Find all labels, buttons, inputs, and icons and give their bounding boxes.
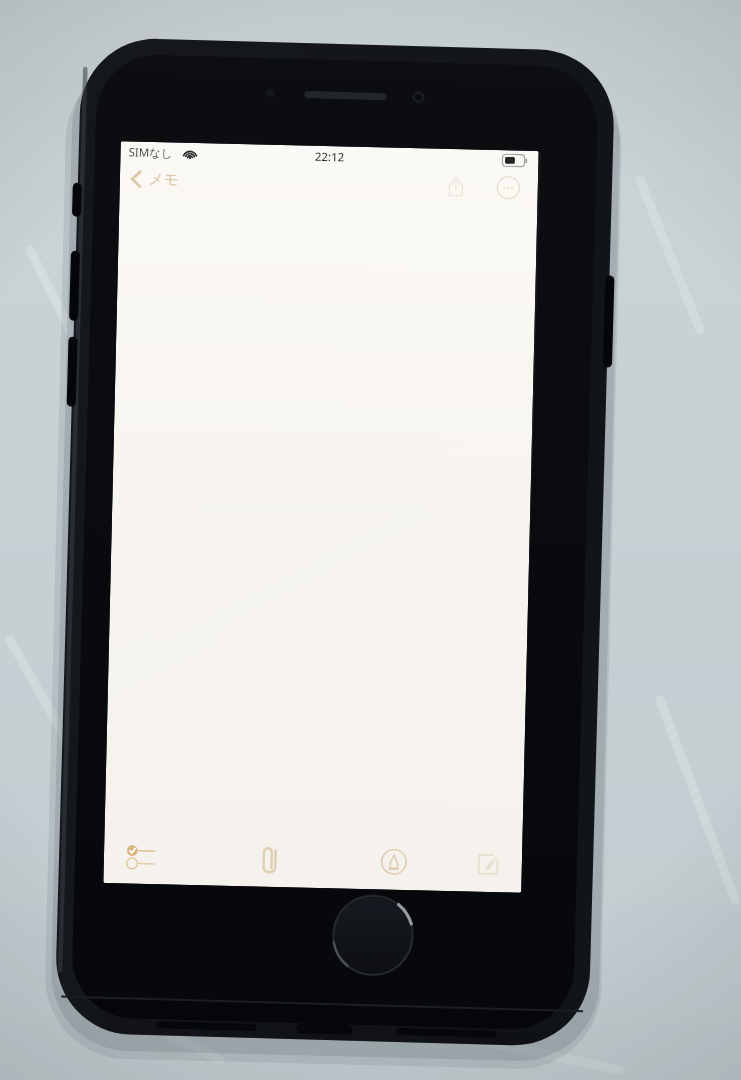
staticText: メモ — [149, 170, 179, 189]
button[interactable] — [105, 197, 537, 837]
button[interactable]: More — [489, 169, 528, 206]
button[interactable]: Add attachment — [245, 836, 294, 883]
button[interactable]: New note — [463, 841, 512, 889]
button[interactable]: メモ — [123, 161, 200, 197]
button[interactable]: Markup — [369, 839, 418, 886]
button[interactable]: Checklist — [115, 833, 170, 881]
button[interactable]: Share — [437, 169, 474, 203]
staticText: SIMなし — [128, 144, 174, 161]
staticText: 22:12 — [120, 144, 539, 170]
